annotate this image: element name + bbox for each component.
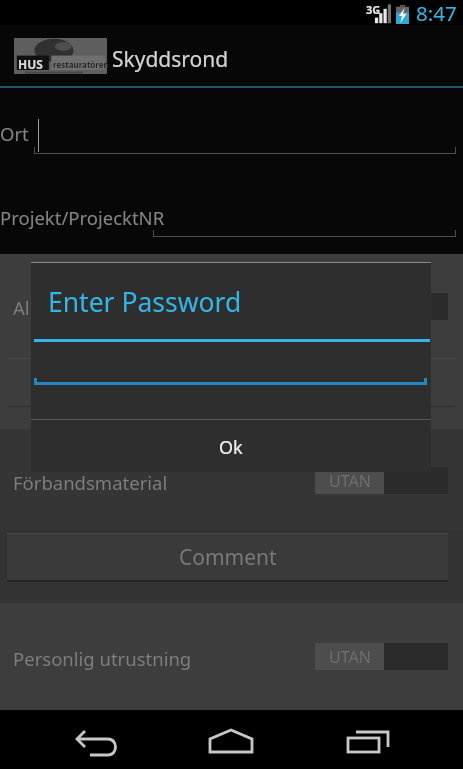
staticText: Ok bbox=[219, 435, 243, 460]
staticText: Skyddsrond bbox=[112, 45, 229, 74]
staticText: 8:47 bbox=[416, 0, 457, 24]
button[interactable]: UTAN bbox=[315, 467, 448, 494]
staticText: Ort bbox=[0, 121, 29, 146]
staticText: UTAN bbox=[329, 470, 371, 492]
button[interactable]: UTAN bbox=[315, 643, 448, 670]
staticText: Förbandsmaterial bbox=[13, 470, 168, 495]
staticText: restauratören bbox=[53, 59, 109, 70]
staticText: HUS bbox=[18, 56, 43, 72]
staticText: Comment bbox=[179, 543, 277, 572]
staticText: UTAN bbox=[329, 646, 371, 668]
button[interactable]: Home bbox=[194, 711, 268, 766]
button[interactable]: Back bbox=[60, 712, 134, 767]
staticText: Enter Password bbox=[48, 284, 242, 320]
staticText: Projekt/ProjecktNR bbox=[0, 205, 165, 230]
button[interactable]: Ok bbox=[31, 423, 431, 472]
staticText: Allmänt bbox=[13, 295, 81, 320]
button[interactable]: Comment bbox=[7, 534, 448, 580]
button[interactable]: Recent apps bbox=[332, 711, 406, 766]
staticText: Personlig utrustning bbox=[13, 646, 192, 671]
staticText: 3G bbox=[366, 2, 381, 17]
